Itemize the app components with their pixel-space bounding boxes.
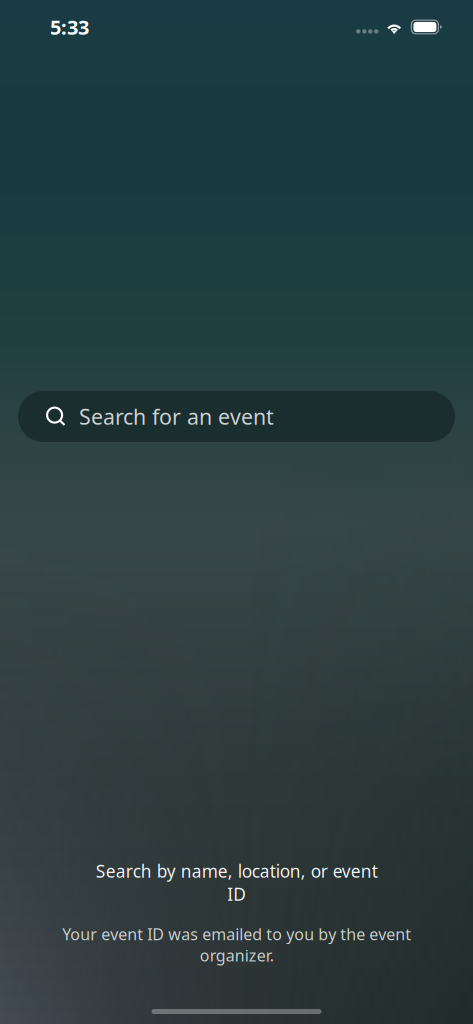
staticText: 5:33 [50, 14, 89, 40]
staticText: Search for an event [79, 402, 274, 431]
button[interactable]: Search for an event [18, 391, 455, 442]
staticText: Your event ID was emailed to you by the … [62, 923, 411, 966]
staticText: Search by name, location, or event ID [95, 859, 377, 905]
